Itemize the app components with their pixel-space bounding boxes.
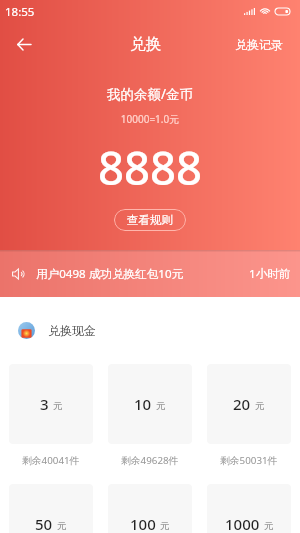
staticText: 1小时前 bbox=[249, 266, 291, 282]
staticText: 兑换 bbox=[130, 34, 161, 54]
staticText: 我的余额/金币 bbox=[0, 85, 300, 103]
button[interactable]: 20 bbox=[207, 364, 291, 444]
staticText: 剩余50031件 bbox=[220, 454, 278, 467]
button[interactable]: 查看规则 bbox=[114, 209, 186, 231]
button[interactable]: 100 bbox=[108, 484, 192, 533]
staticText: 元 bbox=[264, 520, 274, 532]
button[interactable]: 1000 bbox=[207, 484, 291, 533]
staticText: 元 bbox=[53, 400, 63, 412]
button[interactable]: 10 bbox=[108, 364, 192, 444]
button[interactable]: 用户0498 成功兑换红包10元 bbox=[0, 250, 300, 297]
staticText: 元 bbox=[160, 520, 170, 532]
button[interactable]: 兑换记录 bbox=[218, 23, 300, 65]
staticText: 3 bbox=[40, 394, 49, 414]
staticText: 10 bbox=[134, 394, 152, 414]
button[interactable]: 3 bbox=[9, 364, 93, 444]
staticText: 20 bbox=[233, 394, 251, 414]
staticText: 兑换现金 bbox=[48, 323, 96, 338]
staticText: 剩余49628件 bbox=[121, 454, 179, 467]
staticText: 1000 bbox=[225, 514, 260, 533]
button[interactable]: 50 bbox=[9, 484, 93, 533]
staticText: 剩余40041件 bbox=[22, 454, 80, 467]
staticText: 用户0498 成功兑换红包10元 bbox=[36, 266, 184, 282]
staticText: 元 bbox=[156, 400, 166, 412]
button[interactable]: 返回 bbox=[4, 23, 44, 65]
staticText: 查看规则 bbox=[127, 213, 173, 227]
staticText: 元 bbox=[57, 520, 67, 532]
staticText: 10000=1.0元 bbox=[0, 112, 300, 126]
staticText: 8888 bbox=[0, 136, 300, 198]
staticText: 50 bbox=[35, 514, 53, 533]
staticText: 兑换记录 bbox=[235, 37, 283, 52]
staticText: 18:55 bbox=[5, 4, 35, 20]
staticText: 元 bbox=[255, 400, 265, 412]
staticText: 100 bbox=[130, 514, 156, 533]
